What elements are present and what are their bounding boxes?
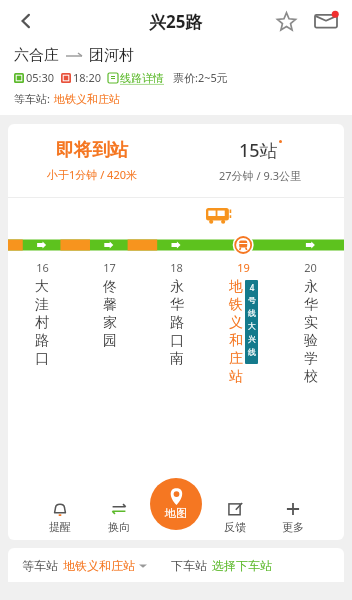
staticText: 永 华 路 口 南: [170, 278, 184, 368]
staticText: 地图: [165, 506, 187, 520]
staticText: 17: [103, 260, 116, 275]
staticText: 16: [36, 260, 49, 275]
staticText: 永 华 实 验 学 校: [304, 278, 318, 386]
button[interactable]: 20: [277, 260, 344, 386]
staticText: 19: [237, 260, 250, 275]
button[interactable]: 地图: [150, 478, 202, 530]
button[interactable]: 更多: [264, 494, 322, 540]
staticText: 兴25路: [149, 10, 203, 33]
button[interactable]: 16: [8, 260, 76, 368]
staticText: 更多: [282, 520, 304, 534]
staticText: 小于1分钟 / 420米: [47, 167, 137, 182]
button[interactable]: 下车站: [171, 558, 272, 573]
button[interactable]: 换向: [89, 494, 148, 540]
staticText: 选择下车站: [212, 558, 272, 573]
button[interactable]: 19: [210, 260, 277, 386]
staticText: 18: [170, 260, 183, 275]
staticText: 地 铁 义 和 庄 站: [229, 278, 243, 386]
staticText: 等车站:: [14, 91, 50, 106]
button[interactable]: 17: [76, 260, 143, 350]
button[interactable]: Messages: [308, 3, 344, 39]
staticText: 佟 馨 家 园: [103, 278, 117, 350]
button[interactable]: Favorite: [268, 3, 304, 39]
staticText: 27分钟 / 9.3公里: [219, 168, 301, 183]
staticText: 线路详情: [120, 71, 164, 85]
staticText: 4 号 线 大 兴 线: [248, 282, 256, 357]
staticText: 大 洼 村 路 口: [35, 278, 49, 368]
staticText: 地铁义和庄站: [54, 92, 120, 106]
button[interactable]: 15站: [176, 124, 344, 197]
staticText: 换向: [108, 520, 130, 534]
button[interactable]: 提醒: [30, 494, 89, 540]
button[interactable]: 反馈: [206, 494, 264, 540]
button[interactable]: Back: [6, 1, 46, 41]
button[interactable]: 18: [143, 260, 210, 368]
staticText: 票价:2~5元: [173, 70, 228, 85]
staticText: 18:20: [73, 70, 102, 85]
staticText: 下车站: [171, 558, 207, 573]
staticText: 六合庄: [14, 46, 59, 65]
button[interactable]: 等车站: [22, 558, 147, 573]
staticText: 反馈: [224, 520, 246, 534]
staticText: 即将到站: [56, 139, 128, 162]
staticText: 05:30: [26, 70, 55, 85]
button[interactable]: 线路详情: [108, 71, 164, 85]
staticText: 团河村: [89, 46, 134, 65]
staticText: 20: [304, 260, 317, 275]
staticText: 地铁义和庄站: [63, 558, 135, 573]
staticText: 15站: [239, 138, 278, 163]
button[interactable]: 即将到站: [8, 124, 176, 197]
staticText: 提醒: [49, 520, 71, 534]
staticText: 等车站: [22, 558, 58, 573]
